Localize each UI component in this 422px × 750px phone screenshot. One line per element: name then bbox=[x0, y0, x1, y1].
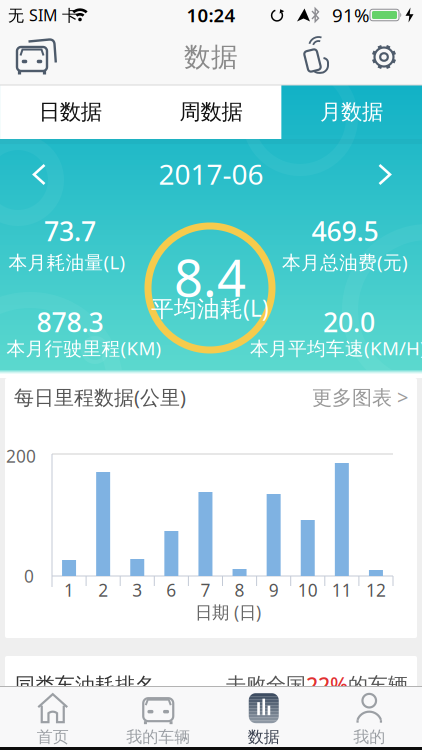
staticText: 469.5 bbox=[311, 213, 378, 249]
button[interactable] bbox=[15, 36, 59, 76]
staticText: 的车辆 bbox=[348, 673, 408, 697]
staticText: 数据 bbox=[248, 727, 280, 747]
staticText: 日数据 bbox=[39, 99, 102, 125]
staticText: 8 bbox=[235, 578, 245, 601]
staticText: 91% bbox=[332, 3, 370, 27]
staticText: 22% bbox=[306, 671, 348, 699]
staticText: 无 SIM 卡 bbox=[8, 4, 78, 26]
staticText: 本月平均车速(KM/H) bbox=[250, 336, 422, 360]
staticText: 200 bbox=[6, 444, 36, 467]
button[interactable]: 月数据 bbox=[281, 85, 422, 139]
staticText: 我的车辆 bbox=[126, 727, 190, 747]
staticText: 击败全国 bbox=[226, 673, 306, 697]
staticText: 同类车油耗排名 bbox=[15, 673, 155, 697]
staticText: 10:24 bbox=[186, 3, 235, 27]
button[interactable]: 我的 bbox=[316, 690, 422, 748]
staticText: 7 bbox=[200, 578, 210, 601]
button[interactable]: 数据 bbox=[211, 690, 316, 748]
staticText: 2017-06 bbox=[158, 155, 263, 193]
button[interactable] bbox=[374, 163, 394, 186]
staticText: 878.3 bbox=[36, 304, 103, 340]
button[interactable] bbox=[368, 41, 400, 73]
staticText: 11 bbox=[332, 578, 352, 601]
staticText: 10 bbox=[298, 578, 318, 601]
button[interactable]: 我的车辆 bbox=[105, 690, 211, 748]
staticText: 6 bbox=[166, 578, 176, 601]
staticText: 73.7 bbox=[44, 213, 96, 249]
staticText: 3 bbox=[132, 578, 142, 601]
staticText: 本月总油费(元) bbox=[282, 250, 408, 274]
button[interactable]: 同类车油耗排名 bbox=[0, 0, 422, 750]
button[interactable]: 首页 bbox=[0, 690, 105, 748]
staticText: 月数据 bbox=[320, 99, 383, 125]
staticText: 数据 bbox=[184, 41, 238, 73]
staticText: 0 bbox=[24, 564, 34, 587]
staticText: 12 bbox=[366, 578, 386, 601]
staticText: 本月行驶里程(KM) bbox=[6, 336, 161, 360]
staticText: 首页 bbox=[37, 727, 69, 747]
button[interactable] bbox=[30, 163, 50, 186]
staticText: 2 bbox=[98, 578, 108, 601]
button[interactable]: 周数据 bbox=[141, 85, 281, 139]
staticText: 平均油耗(L) bbox=[151, 293, 269, 323]
staticText: 1 bbox=[64, 578, 74, 601]
staticText: 9 bbox=[269, 578, 279, 601]
staticText: 我的 bbox=[353, 727, 385, 747]
staticText: 日期 (日) bbox=[195, 600, 261, 623]
staticText: 20.0 bbox=[323, 304, 375, 340]
staticText: 更多图表 > bbox=[312, 384, 408, 410]
staticText: 本月耗油量(L) bbox=[8, 250, 125, 274]
staticText: 每日里程数据(公里) bbox=[14, 384, 186, 410]
button[interactable]: 更多图表 > bbox=[288, 387, 408, 407]
staticText: 周数据 bbox=[179, 99, 242, 125]
button[interactable] bbox=[299, 39, 333, 75]
button[interactable]: 日数据 bbox=[0, 85, 141, 139]
staticText: 8.4 bbox=[174, 243, 246, 311]
